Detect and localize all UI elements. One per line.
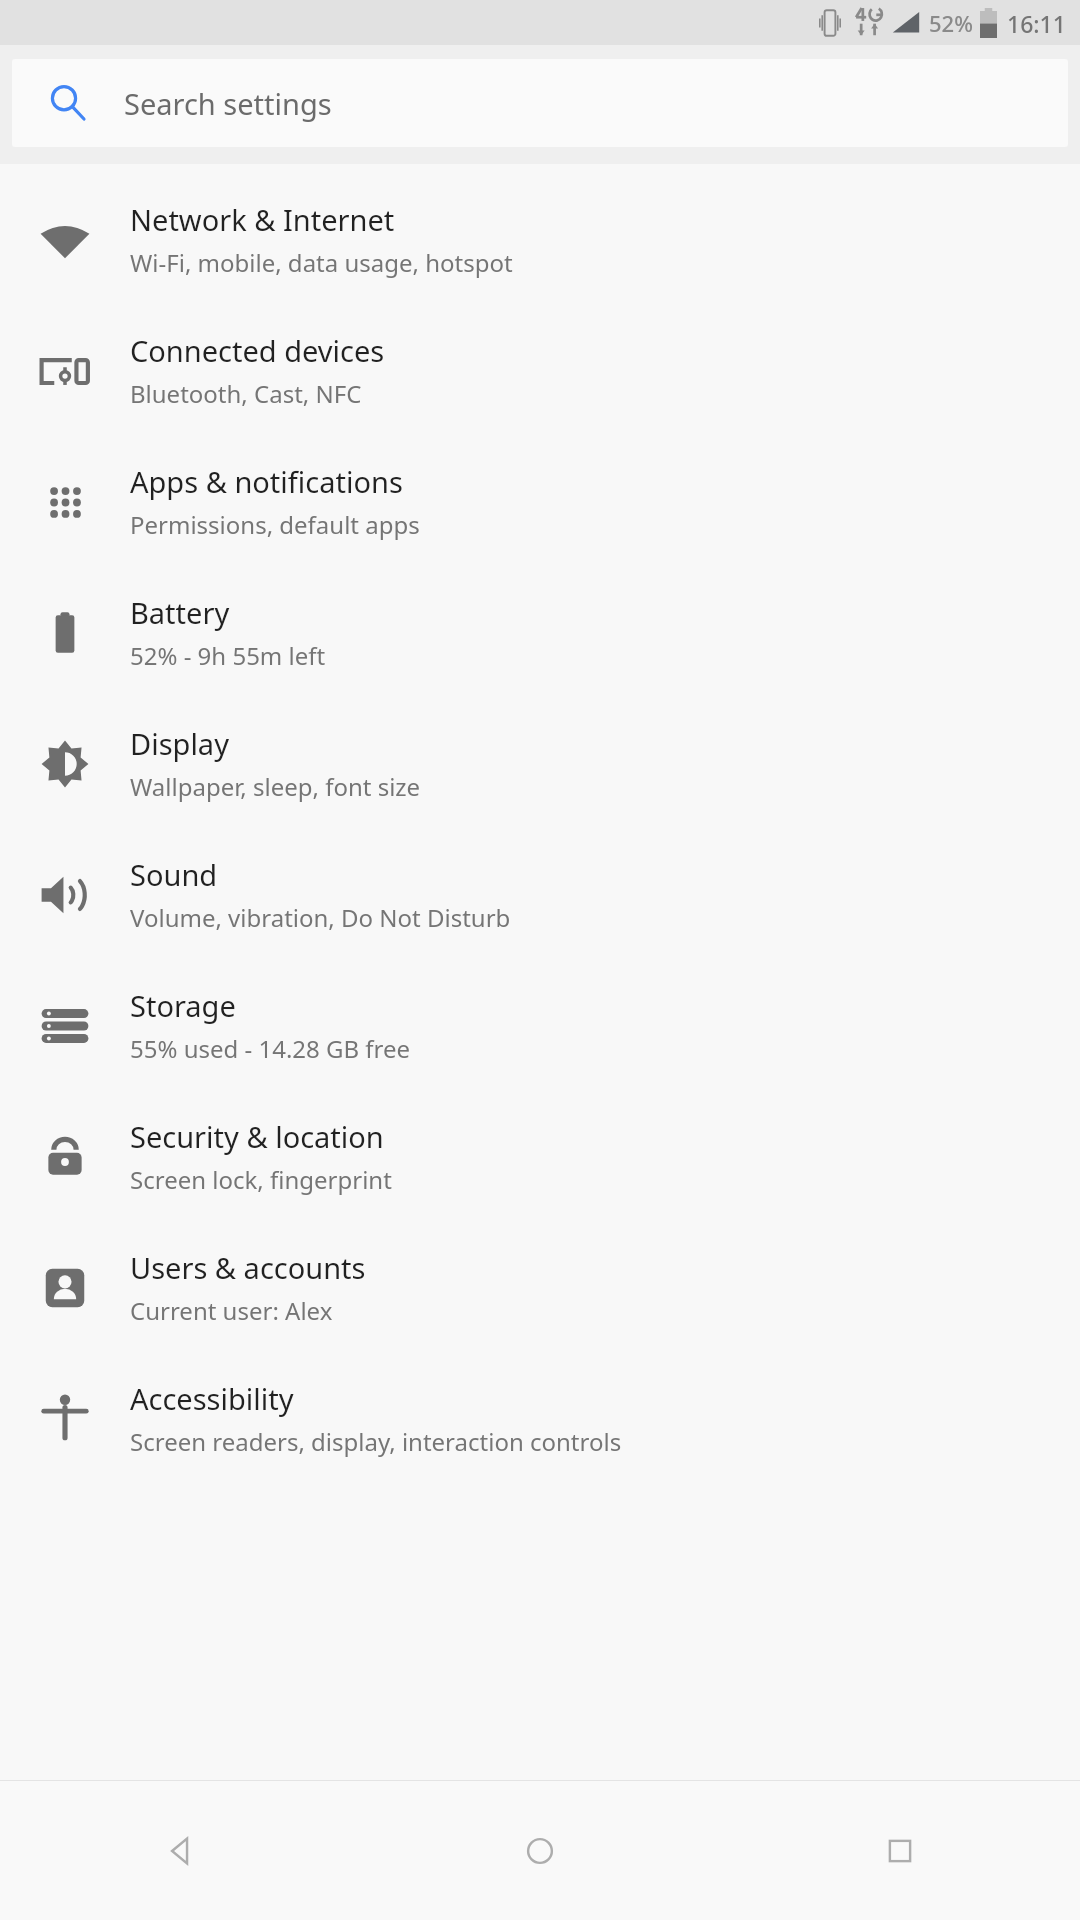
staticText: Volume, vibration, Do Not Disturb	[130, 901, 511, 934]
button[interactable]: Security & location	[0, 1091, 1080, 1222]
staticText: Wallpaper, sleep, font size	[130, 770, 421, 803]
button[interactable]: Apps & notifications	[0, 436, 1080, 567]
button[interactable]: Storage	[0, 960, 1080, 1091]
button[interactable]: Sound	[0, 829, 1080, 960]
button[interactable]: Home	[360, 1781, 720, 1920]
staticText: 52%	[929, 8, 973, 38]
staticText: Users & accounts	[130, 1248, 366, 1287]
staticText: Connected devices	[130, 331, 385, 370]
staticText: Bluetooth, Cast, NFC	[130, 377, 362, 410]
staticText: Permissions, default apps	[130, 508, 420, 541]
staticText: 55% used - 14.28 GB free	[130, 1032, 411, 1065]
button[interactable]: Accessibility	[0, 1353, 1080, 1484]
button[interactable]: Network & Internet	[0, 174, 1080, 305]
button[interactable]: Connected devices	[0, 305, 1080, 436]
staticText: Screen lock, fingerprint	[130, 1163, 392, 1196]
staticText: Sound	[130, 855, 218, 894]
button[interactable]: Users & accounts	[0, 1222, 1080, 1353]
staticText: 16:11	[1007, 8, 1066, 39]
staticText: Search settings	[124, 84, 332, 123]
staticText: Accessibility	[130, 1379, 294, 1418]
button[interactable]: Battery	[0, 567, 1080, 698]
button[interactable]: Display	[0, 698, 1080, 829]
button[interactable]: Back	[0, 1781, 360, 1920]
staticText: Security & location	[130, 1117, 384, 1156]
staticText: Screen readers, display, interaction con…	[130, 1425, 622, 1458]
staticText: Current user: Alex	[130, 1294, 333, 1327]
staticText: Storage	[130, 986, 236, 1025]
staticText: Battery	[130, 593, 230, 632]
staticText: 52% - 9h 55m left	[130, 639, 326, 672]
staticText: Wi-Fi, mobile, data usage, hotspot	[130, 246, 513, 279]
staticText: Apps & notifications	[130, 462, 403, 501]
staticText: Display	[130, 724, 229, 763]
staticText: Network & Internet	[130, 200, 395, 239]
button[interactable]: Recents	[720, 1781, 1080, 1920]
button[interactable]: Search settings	[12, 59, 1068, 147]
